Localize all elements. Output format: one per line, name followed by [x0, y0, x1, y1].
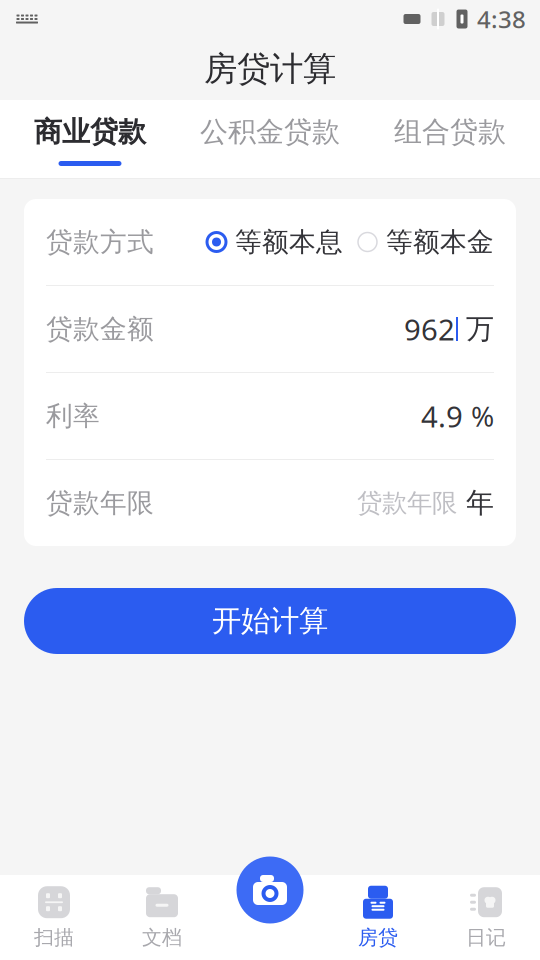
staticText: 万	[466, 312, 494, 346]
staticText: 等额本金	[386, 226, 494, 258]
staticText: 贷款金额	[46, 313, 154, 345]
button[interactable]: 日记	[432, 875, 540, 960]
button[interactable]: 开始计算	[24, 588, 516, 654]
staticText: 文档	[142, 925, 182, 950]
staticText: 组合贷款	[394, 115, 506, 149]
staticText: 利率	[46, 400, 100, 432]
button[interactable]: 商业贷款	[0, 100, 180, 178]
button[interactable]: 组合贷款	[360, 100, 540, 178]
staticText: 962	[404, 309, 455, 348]
staticText: 等额本息	[235, 226, 343, 258]
staticText: 4.9	[421, 396, 463, 435]
staticText: 房贷计算	[204, 48, 336, 89]
button[interactable]: 文档	[108, 875, 216, 960]
staticText: 贷款年限	[357, 487, 457, 518]
staticText: 开始计算	[212, 603, 328, 639]
staticText: 商业贷款	[34, 115, 146, 149]
staticText: 贷款方式	[46, 226, 154, 258]
staticText: 年	[466, 486, 494, 520]
staticText: 贷款年限	[46, 487, 154, 519]
button[interactable]: Camera	[236, 856, 303, 923]
staticText: 日记	[466, 925, 506, 950]
staticText: %	[471, 397, 494, 435]
staticText: 扫描	[34, 925, 74, 950]
button[interactable]: 公积金贷款	[180, 100, 360, 178]
staticText: 公积金贷款	[200, 115, 340, 149]
button[interactable]: 扫描	[0, 875, 108, 960]
staticText: 房贷	[358, 925, 398, 950]
button[interactable]: 房贷	[324, 875, 432, 960]
staticText: 4:38	[477, 3, 526, 35]
